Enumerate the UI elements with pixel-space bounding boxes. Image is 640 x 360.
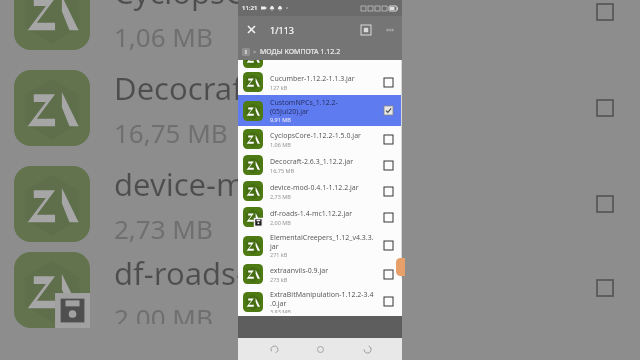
staticText: CustomNPCs_1.12.2-(05Jul20).jar	[270, 98, 375, 116]
staticText: 9,91 MB	[270, 116, 291, 123]
staticText: Cucumber-1.12.2-1.1.3.jar	[270, 74, 355, 84]
button[interactable]: Back	[356, 338, 378, 360]
other: Unchecked	[597, 196, 613, 212]
staticText: 271 kB	[270, 251, 288, 258]
staticText: 1,06 MB	[270, 141, 291, 148]
button[interactable]: >	[238, 43, 402, 60]
staticText: 3,83 MB	[270, 308, 291, 313]
staticText: 1,06 MB	[114, 19, 213, 54]
other: Unchecked	[384, 135, 393, 144]
staticText: CyclopsCo	[114, 0, 264, 13]
staticText: df-roads-	[114, 252, 246, 294]
staticText: 1/113	[270, 24, 294, 36]
staticText: >	[253, 48, 257, 56]
button[interactable]: ExtraBitManipulation-1.12.2-3.4.0.jar	[238, 287, 402, 316]
staticText: df-roads-1.4-mc1.12.2.jar	[270, 209, 353, 219]
other: Unchecked	[384, 78, 393, 87]
button[interactable]: Decocraft-2.6.3_1.12.2.jar	[238, 152, 402, 178]
staticText: 16,75 MB	[270, 167, 295, 174]
other: Unchecked	[597, 280, 613, 296]
other: Unchecked	[384, 187, 393, 196]
other: Unchecked	[597, 100, 613, 116]
other: Unchecked	[597, 4, 613, 20]
staticText: extraanvils-0.9.jar	[270, 266, 329, 276]
staticText: 2,73 MB	[114, 211, 213, 246]
button[interactable]: CyclopsCore-1.12.2-1.5.0.jar	[238, 126, 402, 152]
button[interactable]: Select all	[354, 18, 378, 42]
staticText: 11:21	[242, 4, 258, 12]
staticText: 2,00 MB	[270, 219, 291, 226]
other: Unchecked	[384, 297, 393, 306]
button[interactable]: CustomNPCs_1.12.2-(05Jul20).jar	[238, 95, 402, 126]
button[interactable]: ElementalCreepers_1.12_v4.3.3.jar	[238, 230, 402, 261]
button[interactable]: df-roads-1.4-mc1.12.2.jar	[238, 204, 402, 230]
staticText: CyclopsCore-1.12.2-1.5.0.jar	[270, 131, 361, 141]
other: Unchecked	[384, 270, 393, 279]
staticText: Decocraft-	[114, 67, 265, 109]
button[interactable]: Close	[238, 16, 265, 43]
staticText: ElementalCreepers_1.12_v4.3.3.jar	[270, 233, 375, 251]
button[interactable]: Recents	[263, 338, 285, 360]
staticText: device-mod-0.4.1-1.12.2.jar	[270, 183, 359, 193]
staticText: Decocraft-2.6.3_1.12.2.jar	[270, 157, 354, 167]
button[interactable]: Home	[309, 338, 331, 360]
button[interactable]: extraanvils-0.9.jar	[238, 261, 402, 287]
staticText: 273 kB	[270, 276, 288, 283]
other: Unchecked	[384, 161, 393, 170]
staticText: МОДЫ КОМПОТА 1.12.2	[260, 47, 341, 57]
staticText: device-mo	[114, 163, 264, 205]
staticText: 2,00 MB	[114, 300, 213, 324]
other: Checked	[384, 106, 393, 115]
staticText: 2,73 MB	[270, 193, 291, 200]
button[interactable]: Cucumber-1.12.2-1.1.3.jar	[238, 69, 402, 95]
other: Unchecked	[384, 213, 393, 222]
staticText: 127 kB	[270, 84, 288, 91]
staticText: 16,75 MB	[114, 115, 228, 150]
other: Unchecked	[384, 241, 393, 250]
button[interactable]: More options	[378, 18, 402, 42]
staticText: ExtraBitManipulation-1.12.2-3.4.0.jar	[270, 290, 375, 308]
button[interactable]: device-mod-0.4.1-1.12.2.jar	[238, 178, 402, 204]
